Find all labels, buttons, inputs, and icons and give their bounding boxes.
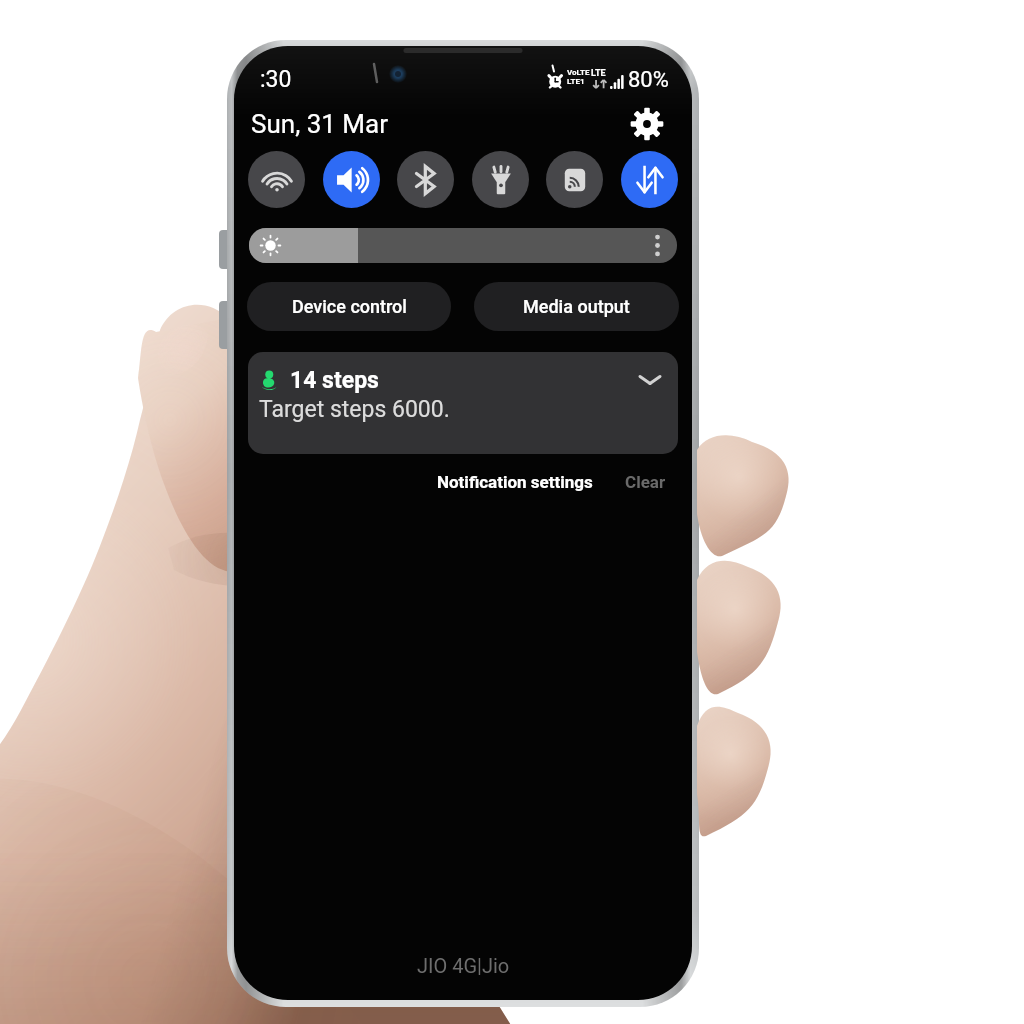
staticText: Clear bbox=[625, 472, 666, 492]
staticText: Device control bbox=[292, 296, 407, 317]
staticText: Sun, 31 Mar bbox=[251, 109, 389, 139]
button[interactable]: Flashlight bbox=[472, 151, 529, 208]
button[interactable]: Settings bbox=[626, 103, 668, 145]
button[interactable]: Bluetooth bbox=[397, 151, 454, 208]
staticText: 80% bbox=[628, 67, 669, 93]
button[interactable]: Wi-Fi bbox=[248, 151, 305, 208]
staticText: JIO 4G|Jio bbox=[417, 954, 510, 977]
button[interactable]: Cast bbox=[546, 151, 603, 208]
staticText: VoLTE bbox=[567, 68, 590, 77]
button[interactable]: Brightness bbox=[249, 228, 677, 263]
button[interactable]: 14 steps bbox=[248, 352, 678, 454]
staticText: 14 steps bbox=[290, 367, 379, 394]
button[interactable]: Notification settings bbox=[431, 464, 599, 500]
staticText: Media output bbox=[523, 296, 630, 317]
staticText: LTE bbox=[591, 68, 606, 79]
button[interactable]: Volume bbox=[323, 151, 380, 208]
staticText: LTE1 bbox=[567, 77, 585, 86]
button[interactable]: Expand notification bbox=[636, 366, 664, 394]
button[interactable]: Mobile data bbox=[621, 151, 678, 208]
button[interactable]: Media output bbox=[474, 282, 679, 331]
staticText: Notification settings bbox=[437, 472, 593, 492]
button[interactable]: Device control bbox=[247, 282, 451, 331]
staticText: Target steps 6000. bbox=[259, 396, 450, 423]
button[interactable]: Clear bbox=[619, 464, 672, 500]
staticText: :30 bbox=[260, 66, 292, 93]
